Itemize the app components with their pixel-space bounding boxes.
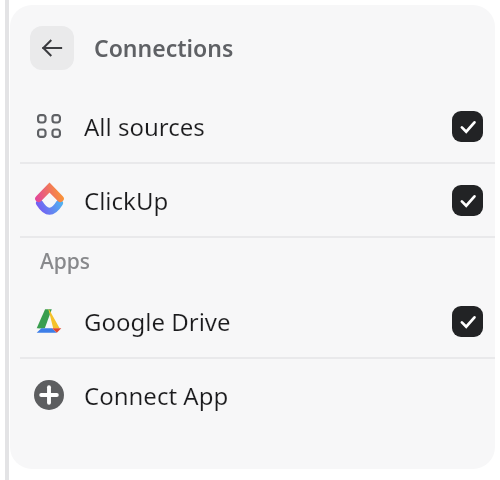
- staticText: Google Drive: [84, 305, 231, 338]
- button[interactable]: Toggle All sources: [452, 111, 483, 142]
- button[interactable]: Back: [30, 26, 74, 70]
- staticText: ClickUp: [84, 184, 169, 217]
- button[interactable]: Google Drive: [10, 285, 495, 357]
- button[interactable]: Toggle Google Drive: [452, 306, 483, 337]
- button[interactable]: ClickUp: [10, 164, 495, 236]
- button[interactable]: Connect App: [10, 359, 495, 431]
- staticText: Connect App: [84, 379, 229, 412]
- button[interactable]: All sources: [10, 90, 495, 162]
- staticText: All sources: [84, 110, 205, 143]
- staticText: Apps: [40, 247, 91, 276]
- staticText: Connections: [94, 32, 234, 63]
- button[interactable]: Toggle ClickUp: [452, 185, 483, 216]
